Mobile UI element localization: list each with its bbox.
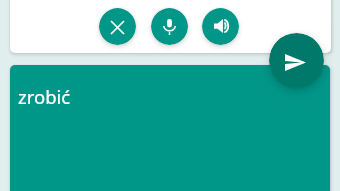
button[interactable]: Send [269,33,324,88]
button[interactable]: Speak [151,8,188,45]
button[interactable]: Clear text [99,8,136,45]
button[interactable] [10,0,331,53]
button[interactable]: zrobić [10,65,330,191]
staticText: zrobić [18,84,71,109]
button[interactable]: Listen [202,8,239,45]
